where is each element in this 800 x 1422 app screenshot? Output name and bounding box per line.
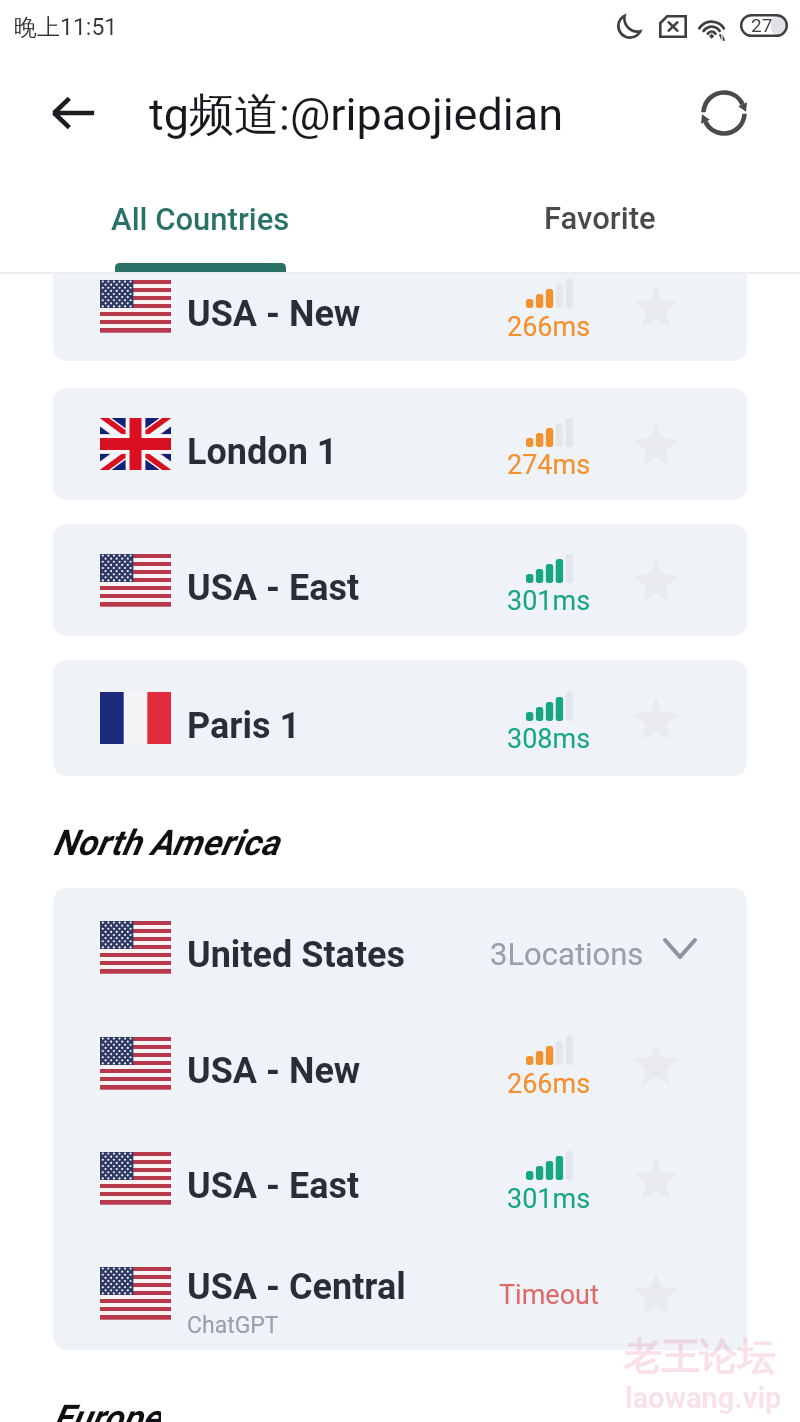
button[interactable]: Back	[37, 77, 109, 149]
staticText: Timeout	[499, 1279, 599, 1311]
staticText: Europe	[53, 1397, 161, 1422]
staticText: Paris 1	[187, 705, 301, 747]
staticText: 266ms	[507, 311, 591, 343]
staticText: Favorite	[544, 200, 656, 236]
staticText: tg频道:@ripaojiedian	[149, 87, 564, 144]
staticText: USA - New	[187, 293, 361, 335]
button[interactable]: Expand	[662, 930, 698, 966]
staticText: 晚上11:51	[14, 13, 118, 42]
staticText: 274ms	[507, 449, 591, 481]
button[interactable]: Refresh	[690, 79, 758, 147]
button[interactable]: Favorite	[633, 284, 679, 330]
staticText: 301ms	[507, 585, 591, 617]
button[interactable]: United States	[53, 888, 747, 1005]
staticText: 266ms	[507, 1068, 591, 1100]
staticText: USA - New	[187, 1050, 361, 1092]
button[interactable]: USA - East	[53, 524, 747, 636]
button[interactable]: USA - East	[53, 1120, 747, 1235]
button[interactable]: Favorite	[400, 168, 800, 272]
button[interactable]: Favorite	[633, 696, 679, 742]
other: Do not disturb	[617, 13, 643, 39]
button[interactable]: Favorite	[633, 1156, 679, 1202]
button[interactable]: USA - New	[53, 1005, 747, 1120]
button[interactable]: USA - New	[53, 274, 747, 349]
button[interactable]: Favorite	[633, 422, 679, 468]
staticText: 3Locations	[490, 936, 644, 972]
button[interactable]: Favorite	[633, 1041, 679, 1087]
staticText: United States	[187, 934, 406, 976]
staticText: USA - East	[187, 567, 360, 609]
button[interactable]: Favorite	[633, 1271, 679, 1317]
staticText: laowang.vip	[625, 1381, 782, 1415]
staticText: 301ms	[507, 1183, 591, 1215]
staticText: London 1	[187, 431, 338, 473]
staticText: 308ms	[507, 723, 591, 755]
staticText: USA - Central	[187, 1266, 406, 1308]
staticText: USA - East	[187, 1165, 360, 1207]
staticText: 老王论坛	[623, 1333, 775, 1381]
staticText: 27	[751, 14, 773, 36]
button[interactable]: London 1	[53, 388, 747, 500]
staticText: All Countries	[111, 201, 290, 237]
staticText: ChatGPT	[187, 1312, 279, 1339]
button[interactable]: Favorite	[633, 558, 679, 604]
button[interactable]: USA - Central	[53, 1235, 747, 1350]
staticText: North America	[53, 822, 279, 864]
button[interactable]: All Countries	[0, 168, 400, 272]
button[interactable]: Paris 1	[53, 660, 747, 776]
